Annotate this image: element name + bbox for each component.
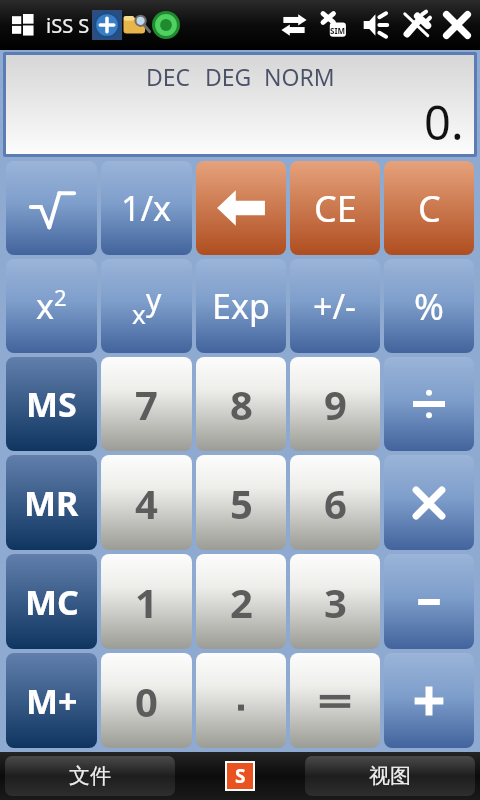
staticText: 6: [324, 476, 347, 530]
button[interactable]: Backspace: [196, 161, 286, 255]
staticText: DEC: [146, 61, 191, 92]
staticText: x: [132, 296, 146, 331]
button[interactable]: MS: [6, 357, 97, 451]
button[interactable]: MR: [6, 455, 97, 550]
button[interactable]: 5: [196, 455, 286, 550]
staticText: S: [235, 763, 246, 789]
staticText: %: [414, 282, 444, 331]
staticText: y: [146, 279, 162, 320]
button[interactable]: 7: [101, 357, 192, 451]
button[interactable]: Start: [8, 10, 38, 40]
button[interactable]: Divide: [384, 357, 474, 451]
button[interactable]: Decimal point: [196, 653, 286, 748]
button[interactable]: C: [384, 161, 474, 255]
staticText: 2: [54, 282, 67, 312]
staticText: 0.: [424, 90, 464, 154]
staticText: 8: [230, 377, 253, 431]
staticText: 1/x: [121, 185, 172, 231]
button[interactable]: 1: [101, 554, 192, 649]
button[interactable]: CE: [290, 161, 380, 255]
button[interactable]: MC: [6, 554, 97, 649]
button[interactable]: Plus: [384, 653, 474, 748]
button[interactable]: 3: [290, 554, 380, 649]
staticText: 2: [230, 575, 253, 629]
staticText: MS: [26, 381, 77, 427]
staticText: 视图: [369, 763, 411, 789]
staticText: 0: [135, 674, 158, 728]
staticText: DEG: [205, 61, 252, 92]
staticText: 5: [230, 476, 253, 530]
staticText: C: [418, 184, 441, 233]
staticText: 7: [135, 377, 158, 431]
button[interactable]: 4: [101, 455, 192, 550]
staticText: SIM: [330, 25, 346, 36]
button[interactable]: Exp: [196, 259, 286, 353]
staticText: MR: [24, 480, 79, 526]
button[interactable]: 2: [196, 554, 286, 649]
staticText: CE: [314, 184, 357, 233]
button[interactable]: 1/x: [101, 161, 192, 255]
button[interactable]: +/-: [290, 259, 380, 353]
button[interactable]: Equals: [290, 653, 380, 748]
button[interactable]: 6: [290, 455, 380, 550]
button[interactable]: x squared: [6, 259, 97, 353]
staticText: Dospy: [315, 752, 432, 794]
button[interactable]: 0: [101, 653, 192, 748]
button[interactable]: 8: [196, 357, 286, 451]
staticText: +/-: [313, 283, 357, 329]
button[interactable]: M+: [6, 653, 97, 748]
button[interactable]: 视图: [305, 756, 475, 796]
staticText: 4: [135, 476, 158, 530]
staticText: iSS S: [46, 12, 90, 39]
staticText: MC: [25, 579, 79, 625]
staticText: x: [36, 283, 54, 329]
staticText: 9: [324, 377, 347, 431]
button[interactable]: x to the power y: [101, 259, 192, 353]
button[interactable]: 文件: [5, 756, 175, 796]
button[interactable]: 9: [290, 357, 380, 451]
button[interactable]: Minus: [384, 554, 474, 649]
button[interactable]: Square root: [6, 161, 97, 255]
button[interactable]: Close: [442, 10, 472, 40]
staticText: NORM: [264, 61, 335, 92]
staticText: 1: [135, 575, 158, 629]
button[interactable]: Input method: [225, 761, 255, 791]
staticText: M+: [26, 678, 78, 724]
button[interactable]: Multiply: [384, 455, 474, 550]
staticText: 3: [324, 575, 347, 629]
staticText: Exp: [212, 283, 270, 329]
button[interactable]: %: [384, 259, 474, 353]
staticText: 文件: [69, 763, 111, 789]
